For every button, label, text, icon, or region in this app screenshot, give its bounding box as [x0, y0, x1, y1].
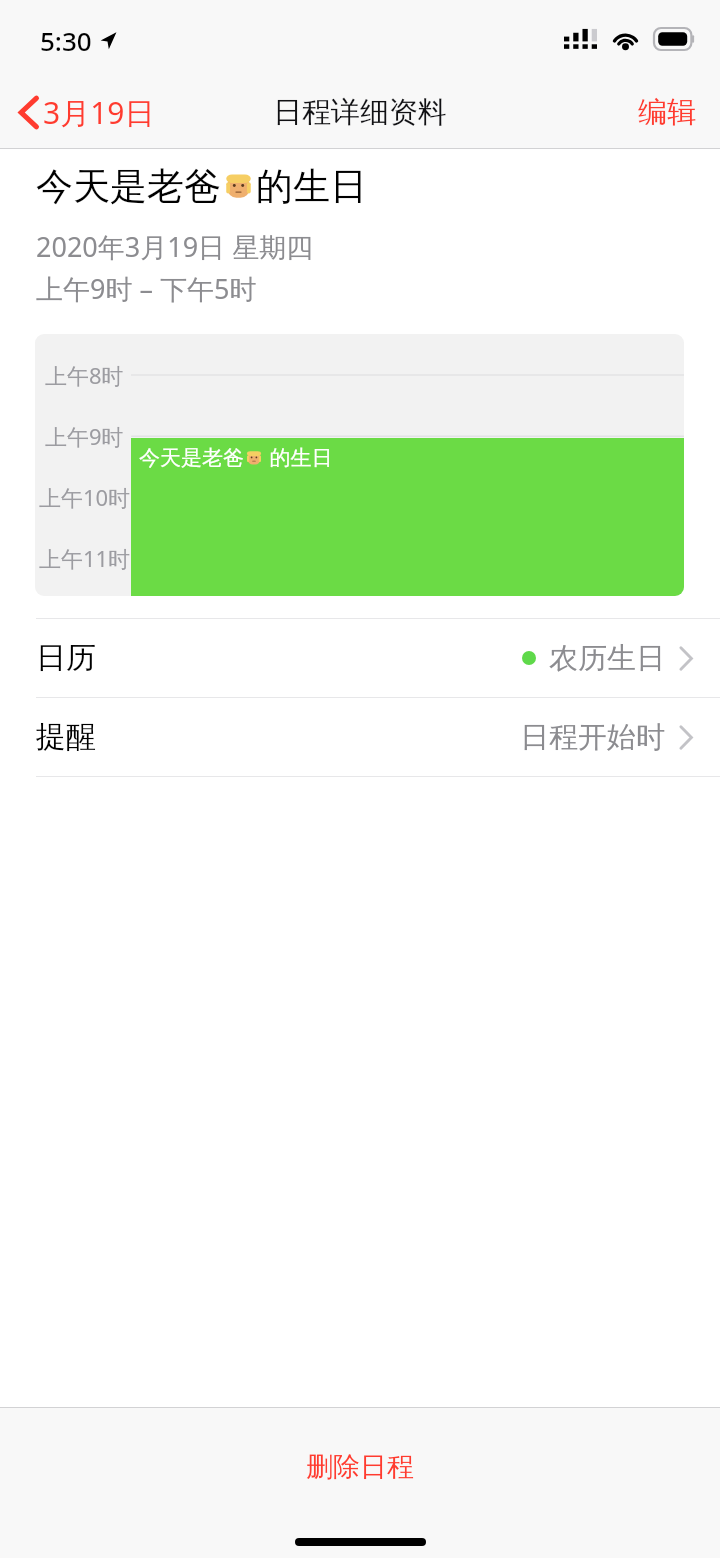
staticText: 的生日 [256, 163, 367, 210]
staticText: 上午9时 – 下午5时 [36, 270, 257, 307]
button[interactable]: 编辑 [614, 82, 720, 143]
staticText: 上午8时 [45, 360, 124, 390]
staticText: 删除日程 [0, 1450, 720, 1484]
staticText: 农历生日 [549, 640, 665, 677]
staticText: 日程详细资料 [273, 94, 447, 131]
button[interactable]: 日历 [0, 619, 720, 697]
staticText: 提醒 [36, 718, 96, 756]
staticText: 5:30 [40, 23, 92, 58]
staticText: 2020年3月19日 星期四 [36, 228, 314, 265]
staticText: 上午9时 [45, 421, 124, 451]
staticText: 3月19日 [43, 92, 155, 133]
button[interactable]: Back to 3月19日 [0, 82, 169, 143]
staticText: 今天是老爸 [139, 445, 244, 471]
staticText: 日程开始时 [520, 719, 665, 756]
staticText: 上午10时 [39, 482, 131, 512]
staticText: 今天是老爸 [36, 163, 221, 210]
staticText: 编辑 [638, 94, 696, 131]
staticText: 的生日 [264, 443, 333, 472]
button[interactable]: 删除日程 [0, 1408, 720, 1558]
staticText: 上午11时 [39, 543, 131, 573]
button[interactable]: 提醒 [0, 698, 720, 776]
button[interactable]: 今天是老爸 [131, 438, 684, 596]
staticText: 日历 [36, 639, 96, 677]
